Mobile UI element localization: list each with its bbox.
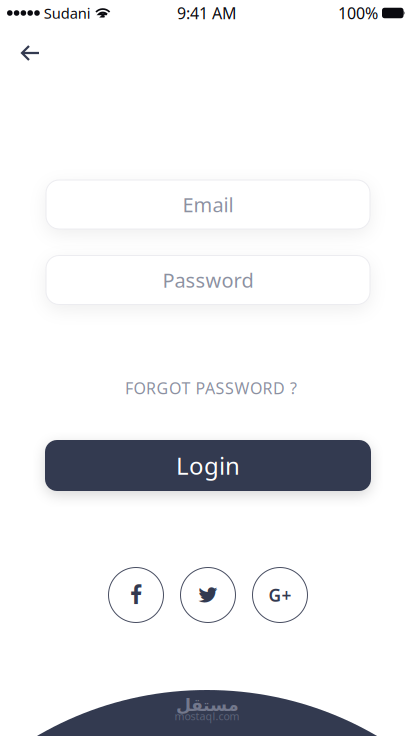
staticText: Sudani [44,3,91,23]
button[interactable]: Email [46,180,370,229]
button[interactable]:  [180,567,235,622]
staticText: مستقل [175,695,238,715]
staticText:  [198,584,218,606]
staticText:  [130,584,142,606]
button[interactable] [14,43,47,63]
staticText: 9:41 AM [177,2,237,24]
staticText: Password [162,267,253,293]
button[interactable]:  [108,567,163,622]
button[interactable]: FORGOT PASSWORD ? [125,377,297,399]
staticText: Login [176,450,240,481]
staticText: Email [182,191,233,218]
staticText: 100% [338,2,378,24]
button[interactable]: Login [45,440,371,491]
staticText: FORGOT PASSWORD ? [125,377,297,399]
button[interactable]: G+ [252,567,307,622]
button[interactable]: Password [46,255,370,304]
staticText: mostaql.com [174,709,239,723]
staticText: G+ [268,583,291,606]
